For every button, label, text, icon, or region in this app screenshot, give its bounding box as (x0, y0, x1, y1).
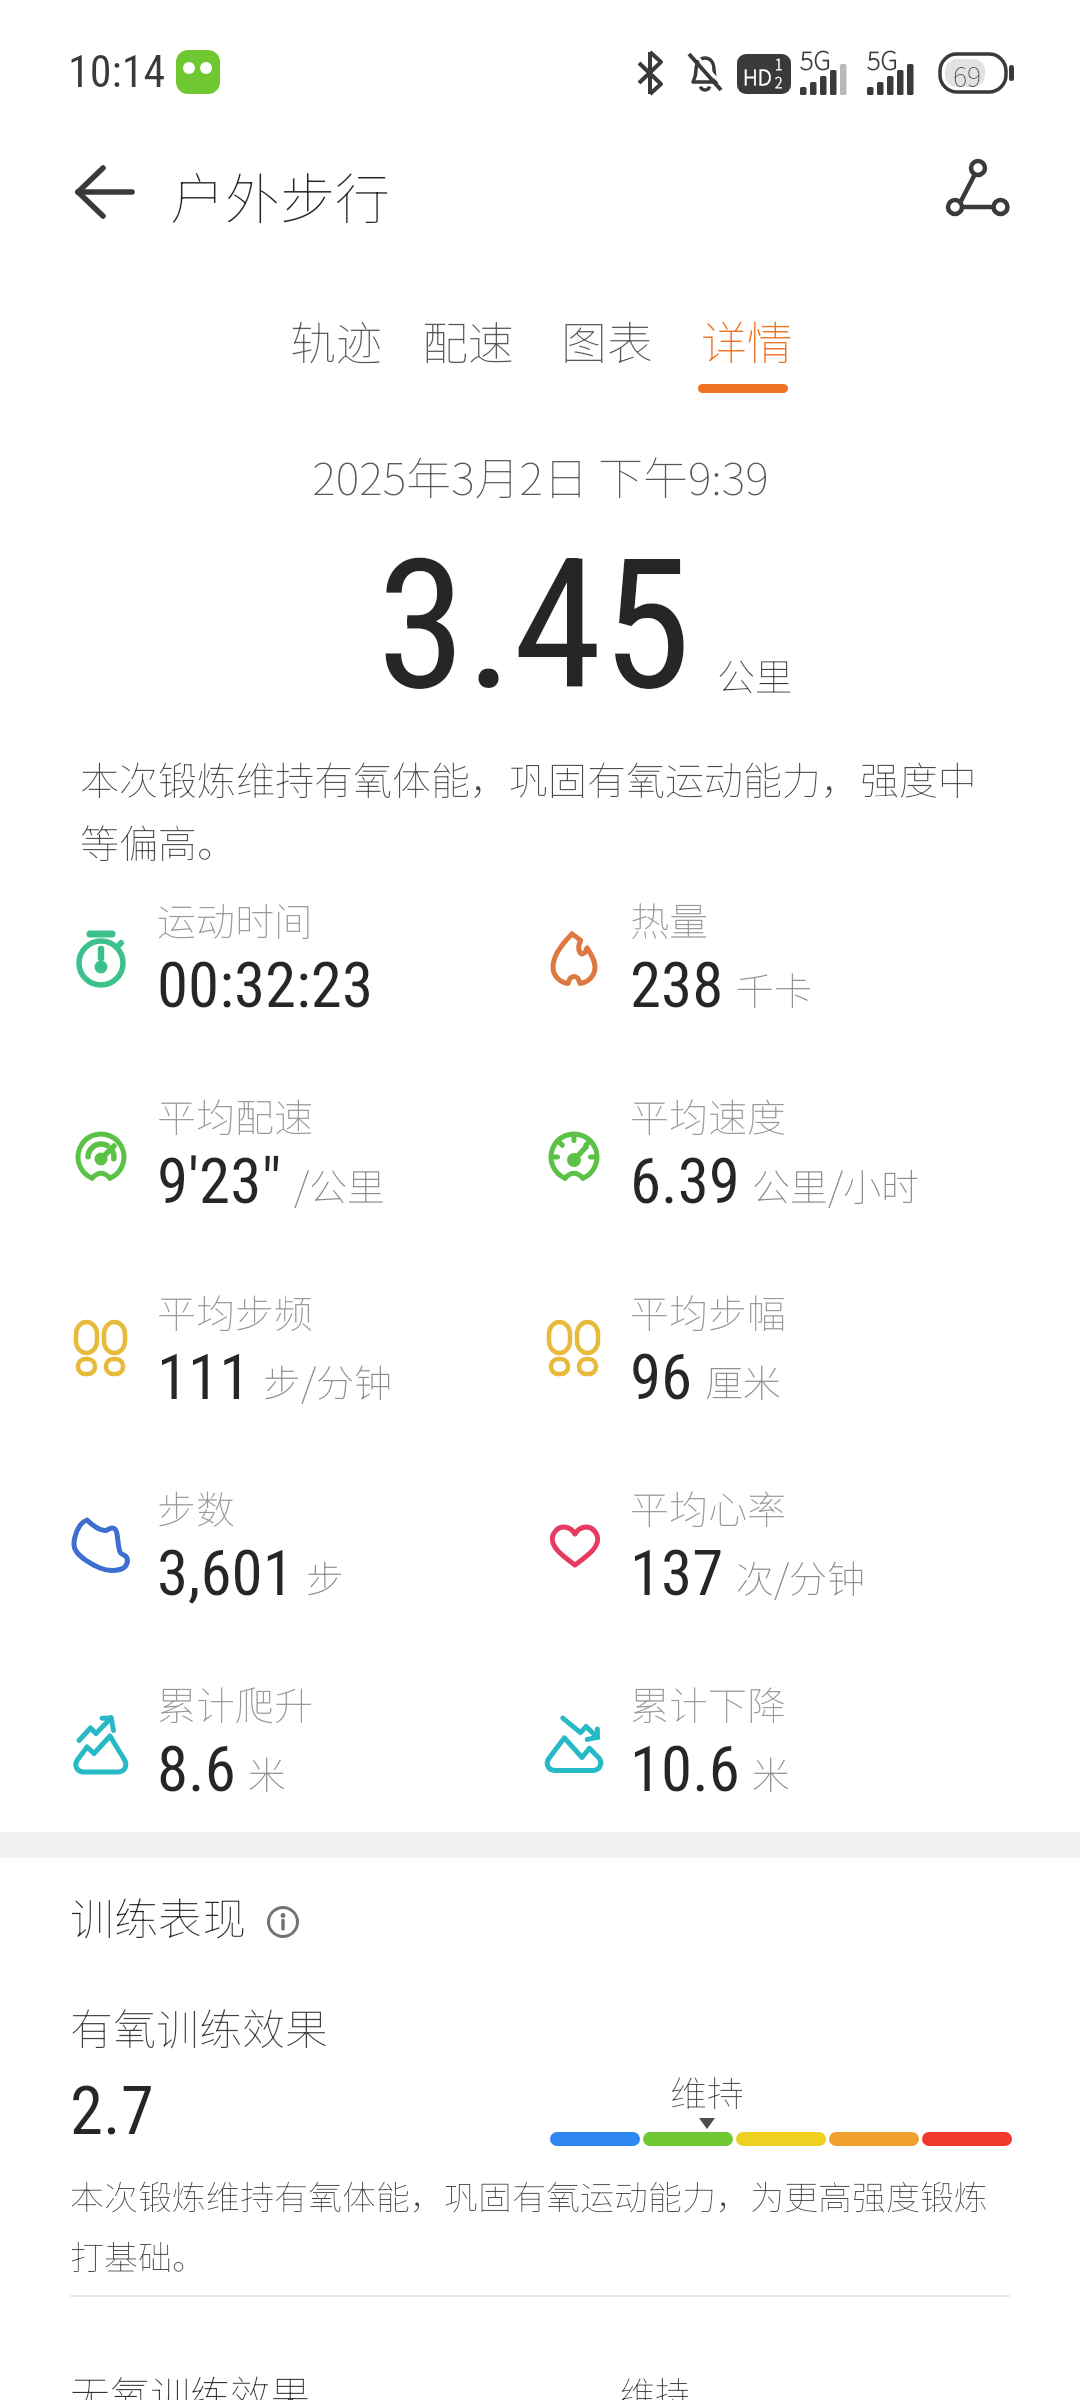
staticText: 9'23" (157, 1145, 282, 1219)
staticText: HD (743, 61, 772, 91)
staticText: 10:14 (68, 46, 166, 98)
staticText: 平均配速 (157, 1087, 314, 1143)
staticText: 运动时间 (157, 891, 314, 947)
staticText: /公里 (294, 1157, 386, 1212)
staticText: 3,601 (157, 1537, 294, 1611)
staticText: 2025年3月2日 下午9:39 (312, 443, 769, 508)
staticText: 公里 (717, 647, 794, 702)
staticText: 6.39 (630, 1145, 740, 1219)
staticText: 米 (248, 1745, 287, 1800)
staticText: 5G (800, 40, 831, 78)
staticText: 厘米 (705, 1353, 782, 1408)
staticText: 累计爬升 (157, 1675, 314, 1731)
staticText: 步 (306, 1549, 345, 1604)
staticText: 维持 (620, 2366, 691, 2400)
staticText: 137 (630, 1537, 724, 1611)
staticText: 户外步行 (170, 155, 391, 235)
staticText: 00:32:23 (157, 949, 374, 1023)
staticText: 米 (752, 1745, 791, 1800)
staticText: 累计下降 (630, 1675, 787, 1731)
staticText: 本次锻炼维持有氧体能，巩固有氧运动能力，为更高强度锻炼 打基础。 (70, 2171, 988, 2280)
staticText: 步数 (157, 1479, 236, 1535)
staticText: 平均速度 (630, 1087, 787, 1143)
staticText: 2.7 (70, 2072, 154, 2151)
staticText: 96 (630, 1341, 693, 1415)
staticText: 有氧训练效果 (70, 1995, 328, 2057)
staticText: 10.6 (630, 1733, 740, 1807)
staticText: 8.6 (157, 1733, 236, 1807)
staticText: 平均步幅 (630, 1283, 787, 1339)
staticText: 图表 (561, 307, 653, 374)
staticText: 238 (630, 949, 724, 1023)
staticText: 3.45 (377, 520, 692, 731)
staticText: 步/分钟 (263, 1353, 393, 1408)
staticText: 轨迹 (290, 307, 382, 374)
staticText: 维持 (670, 2065, 744, 2109)
staticText: 千卡 (736, 961, 813, 1016)
staticText: 111 (157, 1341, 251, 1415)
staticText: 配速 (422, 307, 514, 374)
staticText: 平均心率 (630, 1479, 787, 1535)
staticText: 次/分钟 (736, 1549, 866, 1604)
staticText: 69 (953, 56, 982, 95)
staticText: 2 (775, 72, 783, 92)
staticText: 无氧训练效果 (70, 2364, 310, 2400)
staticText: 详情 (701, 307, 793, 374)
staticText: 公里/小时 (752, 1157, 920, 1212)
staticText: 1 (775, 54, 783, 74)
staticText: 本次锻炼维持有氧体能，巩固有氧运动能力，强度中 等偏高。 (80, 750, 978, 869)
staticText: 热量 (630, 891, 709, 947)
staticText: 5G (867, 40, 898, 78)
staticText: 训练表现 (70, 1884, 246, 1948)
staticText: 平均步频 (157, 1283, 314, 1339)
